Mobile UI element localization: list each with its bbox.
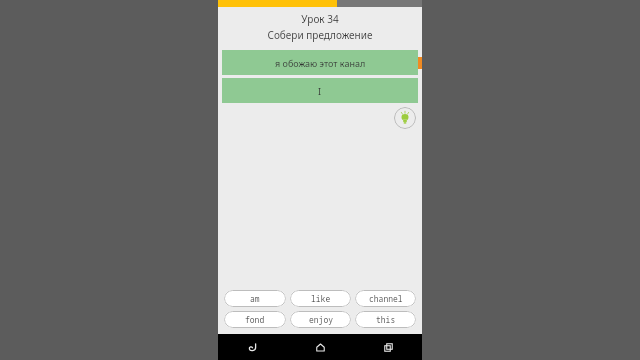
staticText: я обожаю этот канал <box>275 57 366 69</box>
button[interactable]: enjoy <box>290 311 351 328</box>
button[interactable]: like <box>290 290 351 307</box>
staticText: channel <box>369 293 403 304</box>
button[interactable]: channel <box>355 290 416 307</box>
staticText: like <box>311 293 331 304</box>
button[interactable]: I <box>222 78 418 103</box>
staticText: Урок 34 <box>218 12 422 26</box>
staticText: this <box>376 314 396 325</box>
staticText: fond <box>245 314 265 325</box>
button[interactable]: fond <box>224 311 286 328</box>
staticText: enjoy <box>309 314 333 325</box>
staticText: am <box>250 293 260 304</box>
button[interactable]: Recents <box>354 334 422 360</box>
button[interactable]: this <box>355 311 416 328</box>
button[interactable]: Home <box>286 334 354 360</box>
staticText: Собери предложение <box>218 28 422 42</box>
staticText: I <box>318 85 322 97</box>
button[interactable]: am <box>224 290 286 307</box>
button[interactable]: я обожаю этот канал <box>222 50 418 75</box>
button[interactable]: Hint <box>394 107 416 129</box>
button[interactable]: Back <box>218 334 286 360</box>
